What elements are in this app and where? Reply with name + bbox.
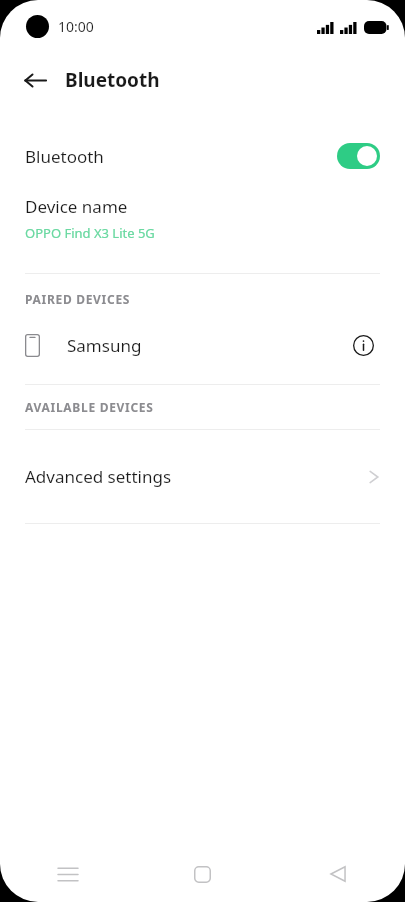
button[interactable]: Back: [13, 58, 57, 102]
button[interactable]: Bluetooth toggle: [337, 143, 380, 169]
staticText: Samsung: [67, 334, 142, 357]
button[interactable]: Back: [270, 846, 405, 902]
staticText: Advanced settings: [25, 465, 172, 488]
button[interactable]: Samsung: [0, 320, 405, 370]
staticText: Bluetooth: [25, 145, 104, 168]
staticText: OPPO Find X3 Lite 5G: [25, 224, 155, 242]
button[interactable]: Advanced settings: [0, 430, 405, 523]
button[interactable]: Recent apps: [0, 846, 135, 902]
staticText: AVAILABLE DEVICES: [25, 399, 154, 415]
staticText: PAIRED DEVICES: [25, 291, 131, 307]
button[interactable]: Device name: [0, 189, 405, 248]
button[interactable]: Bluetooth: [0, 132, 405, 180]
button[interactable]: Home: [135, 846, 270, 902]
button[interactable]: Device details: [346, 328, 380, 362]
staticText: Device name: [25, 195, 128, 218]
staticText: Bluetooth: [65, 67, 160, 93]
staticText: 10:00: [58, 17, 94, 36]
